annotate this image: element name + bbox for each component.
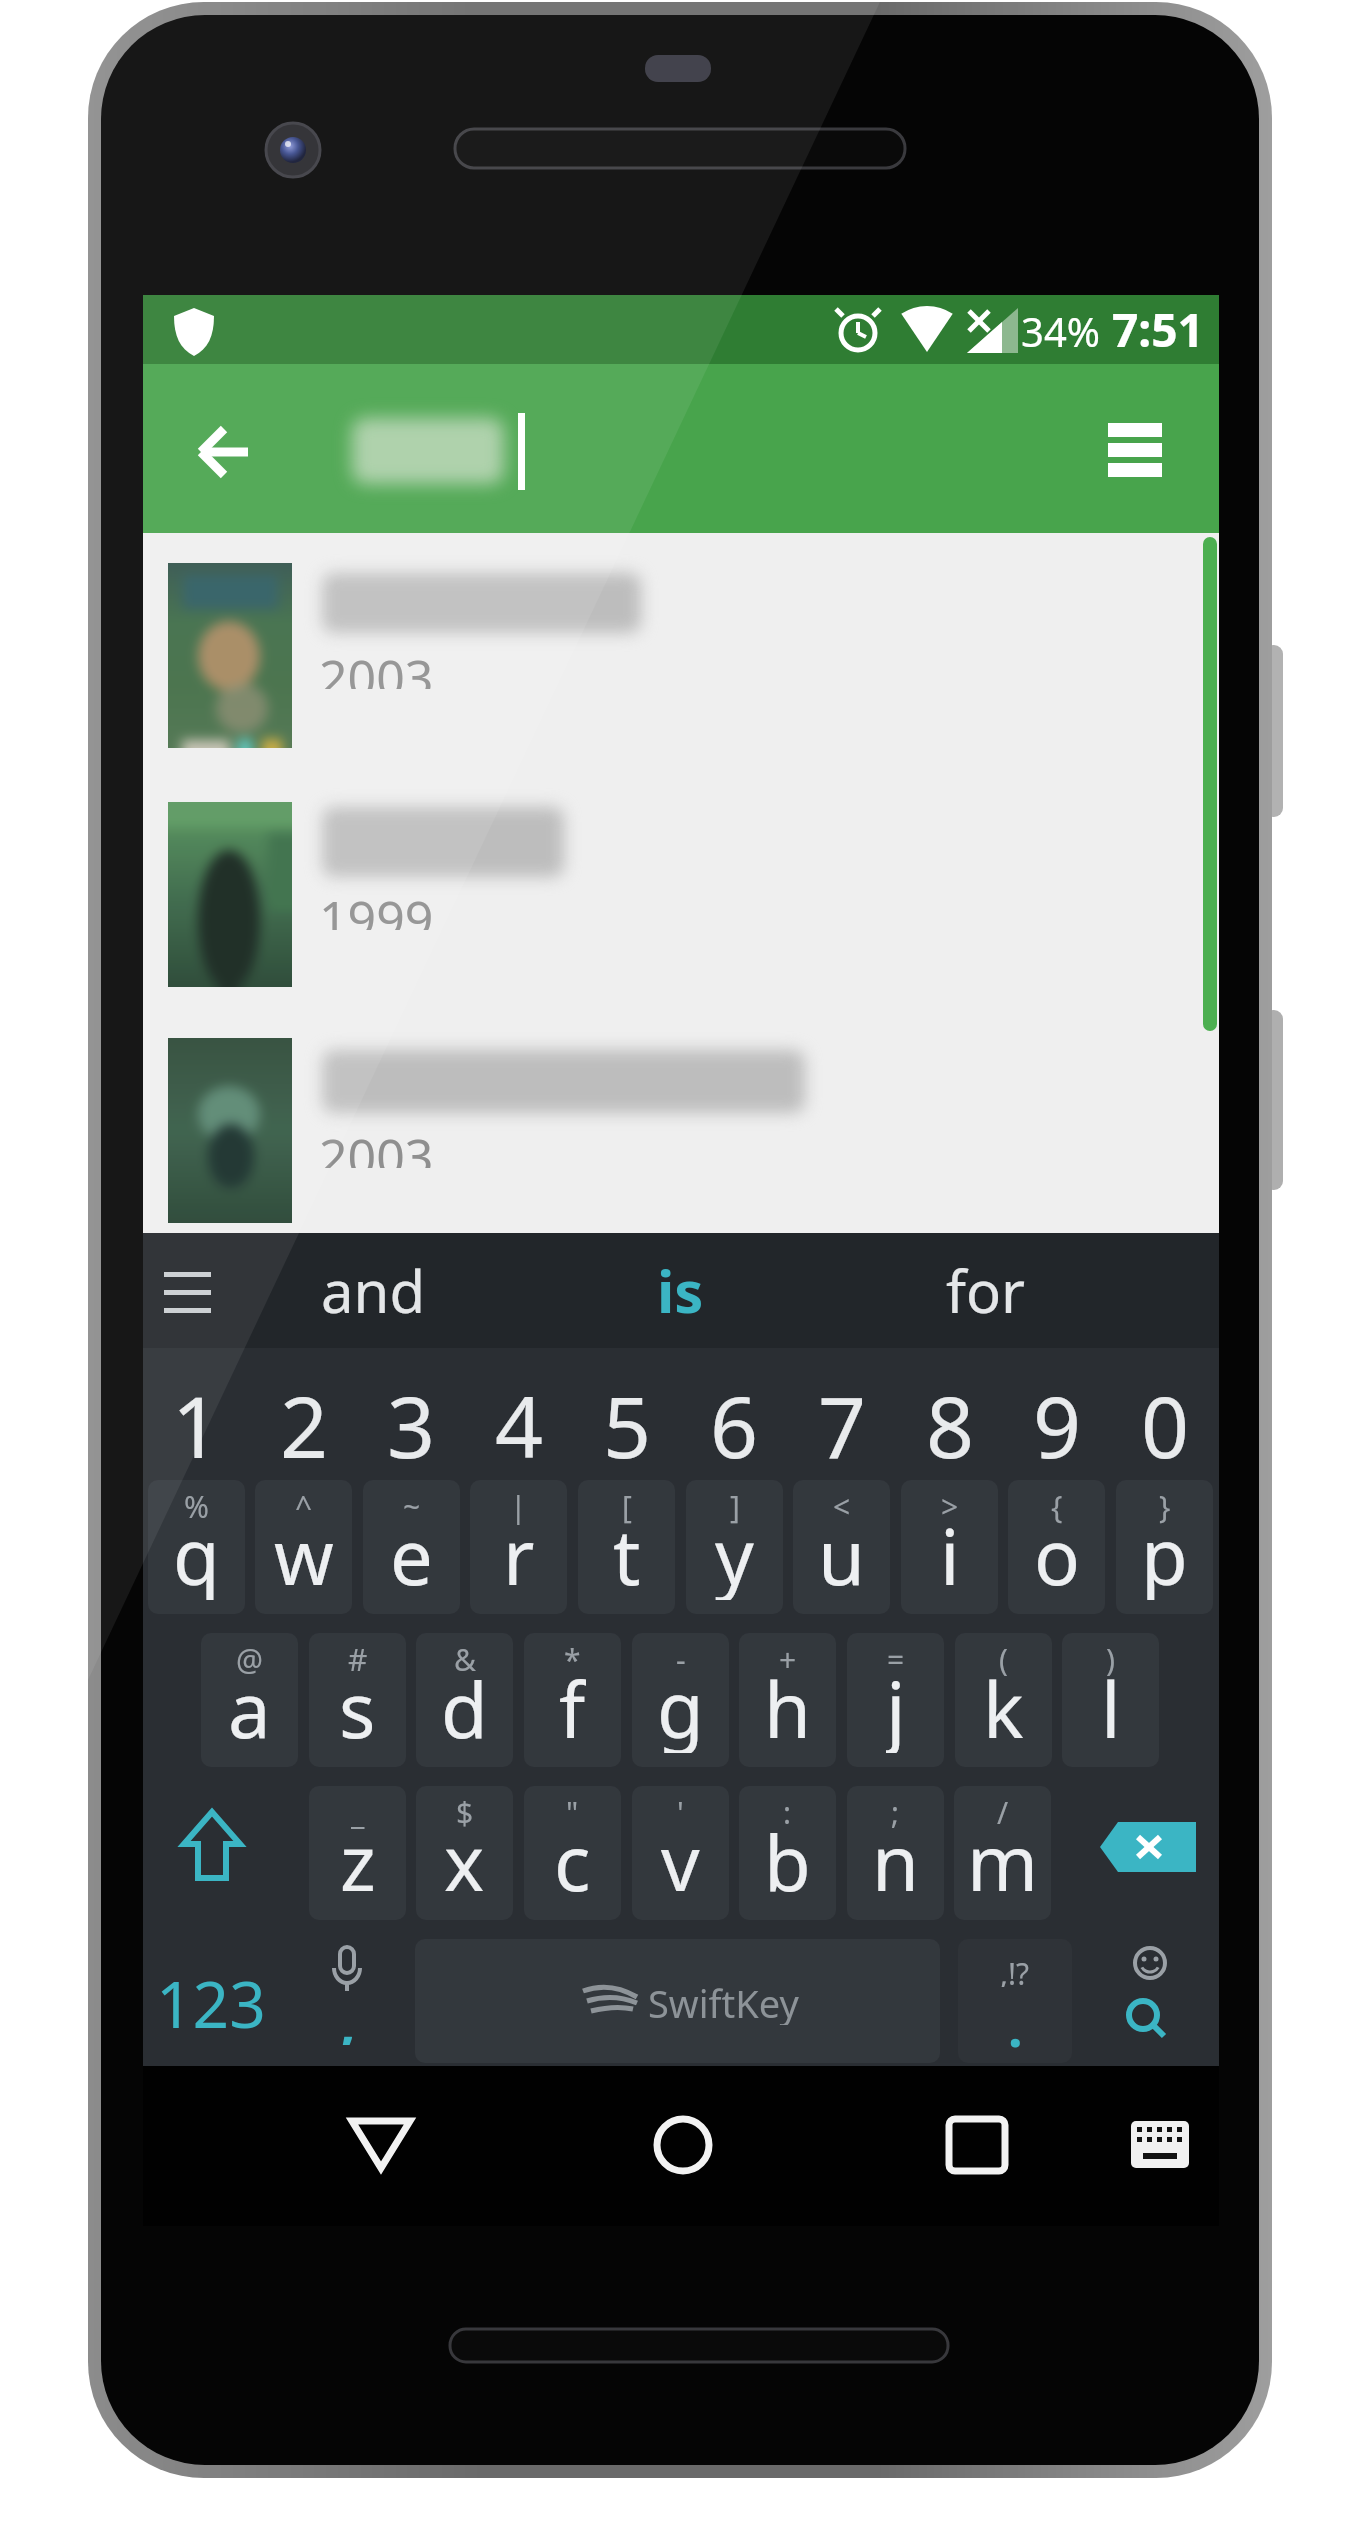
staticText: d	[441, 1657, 488, 1753]
button[interactable]: "	[524, 1786, 621, 1920]
staticText: g	[657, 1657, 704, 1753]
button[interactable]: 6	[684, 1368, 784, 1470]
staticText: )	[1106, 1639, 1115, 1679]
staticText: for	[946, 1251, 1025, 1330]
button[interactable]: _	[309, 1786, 406, 1920]
button[interactable]: ;	[847, 1786, 944, 1920]
button[interactable]: ,	[300, 1939, 395, 2063]
button[interactable]	[143, 1038, 1203, 1270]
button[interactable]	[1090, 1939, 1210, 2063]
button[interactable]: ]	[686, 1480, 783, 1614]
staticText: o	[1034, 1504, 1080, 1600]
button[interactable]: %	[148, 1480, 245, 1614]
staticText: w	[274, 1504, 334, 1600]
staticText: (	[999, 1639, 1008, 1679]
staticText: #	[348, 1639, 368, 1679]
staticText: {	[1051, 1486, 1063, 1526]
staticText: is	[657, 1251, 704, 1330]
button[interactable]: 7	[792, 1368, 892, 1470]
button[interactable]	[633, 2095, 733, 2195]
staticText: 34%	[1021, 304, 1100, 358]
button[interactable]: #	[309, 1633, 406, 1767]
button[interactable]: 123	[146, 1960, 276, 2032]
staticText: 1999	[319, 884, 434, 930]
staticText: >	[941, 1486, 959, 1526]
staticText: m	[967, 1810, 1039, 1906]
staticText: 6	[710, 1368, 759, 1470]
staticText: ]	[730, 1486, 740, 1526]
button[interactable]	[143, 802, 1203, 1034]
button[interactable]	[1110, 2095, 1210, 2195]
staticText: s	[339, 1657, 376, 1753]
staticText: ,	[340, 1985, 356, 2045]
staticText: f	[559, 1657, 586, 1753]
staticText: 2003	[319, 643, 434, 689]
button[interactable]	[1096, 1814, 1200, 1880]
button[interactable]: )	[1062, 1633, 1159, 1767]
button[interactable]: >	[901, 1480, 998, 1614]
staticText: n	[872, 1810, 919, 1906]
staticText: and	[321, 1251, 426, 1330]
button[interactable]: }	[1116, 1480, 1213, 1614]
button[interactable]: ,!?	[958, 1939, 1072, 2063]
staticText: 7	[818, 1368, 867, 1470]
button[interactable]: '	[632, 1786, 729, 1920]
staticText: *	[564, 1639, 581, 1679]
button[interactable]	[143, 563, 1203, 795]
button[interactable]: :	[739, 1786, 836, 1920]
button[interactable]	[180, 407, 270, 497]
button[interactable]: <	[793, 1480, 890, 1614]
button[interactable]: for	[895, 1243, 1075, 1338]
staticText: ~	[403, 1486, 421, 1526]
button[interactable]: 9	[1007, 1368, 1107, 1470]
button[interactable]: =	[847, 1633, 944, 1767]
button[interactable]: is	[590, 1243, 770, 1338]
staticText: i	[940, 1504, 960, 1600]
button[interactable]: +	[739, 1633, 836, 1767]
staticText: 1	[172, 1368, 221, 1470]
staticText: c	[554, 1810, 591, 1906]
button[interactable]: 0	[1115, 1368, 1215, 1470]
staticText: $	[456, 1792, 474, 1832]
button[interactable]: 2	[254, 1368, 354, 1470]
staticText: k	[983, 1657, 1024, 1753]
staticText: x	[444, 1810, 485, 1906]
staticText: b	[764, 1810, 811, 1906]
staticText: :	[783, 1792, 792, 1832]
button[interactable]: ^	[255, 1480, 352, 1614]
button[interactable]: {	[1008, 1480, 1105, 1614]
button[interactable]: 4	[469, 1368, 569, 1470]
button[interactable]: and	[283, 1243, 463, 1338]
button[interactable]: &	[416, 1633, 513, 1767]
button[interactable]	[160, 1800, 264, 1894]
button[interactable]	[150, 1255, 225, 1325]
staticText: y	[715, 1504, 754, 1600]
staticText: <	[833, 1486, 851, 1526]
staticText: '	[677, 1792, 684, 1832]
button[interactable]	[927, 2095, 1027, 2195]
button[interactable]: $	[416, 1786, 513, 1920]
button[interactable]: @	[201, 1633, 298, 1767]
button[interactable]: *	[524, 1633, 621, 1767]
button[interactable]: 3	[361, 1368, 461, 1470]
button[interactable]: ~	[363, 1480, 460, 1614]
staticText: ;	[891, 1792, 900, 1832]
button[interactable]: SwiftKey	[415, 1939, 940, 2063]
button[interactable]: (	[955, 1633, 1052, 1767]
button[interactable]: 5	[577, 1368, 677, 1470]
staticText: "	[566, 1792, 579, 1832]
staticText: 0	[1141, 1368, 1190, 1470]
staticText: u	[818, 1504, 865, 1600]
staticText: +	[779, 1639, 797, 1679]
button[interactable]	[1096, 412, 1186, 502]
button[interactable]: -	[632, 1633, 729, 1767]
staticText: a	[228, 1657, 271, 1753]
button[interactable]: /	[954, 1786, 1051, 1920]
button[interactable]	[330, 2095, 430, 2195]
button[interactable]: [	[578, 1480, 675, 1614]
staticText: =	[887, 1639, 905, 1679]
button[interactable]: 1	[146, 1368, 246, 1470]
button[interactable]: |	[470, 1480, 567, 1614]
button[interactable]: 8	[900, 1368, 1000, 1470]
staticText: -	[676, 1639, 686, 1679]
